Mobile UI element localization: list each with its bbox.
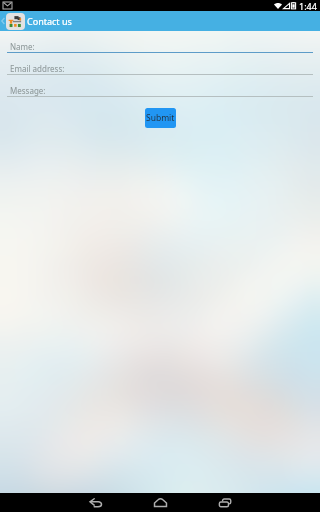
button[interactable]: Home [144,493,176,512]
button[interactable]: Recent apps [209,493,241,512]
button[interactable]: Contact us [0,11,320,31]
button[interactable]: Back [79,493,111,512]
staticText: Submit [146,112,175,124]
staticText: Email address: [10,63,65,74]
staticText: Name: [10,41,35,52]
staticText: Message: [10,85,46,96]
button[interactable]: Submit [145,108,176,128]
staticText: Contact us [27,15,72,27]
staticText: 1:44 [299,0,317,11]
